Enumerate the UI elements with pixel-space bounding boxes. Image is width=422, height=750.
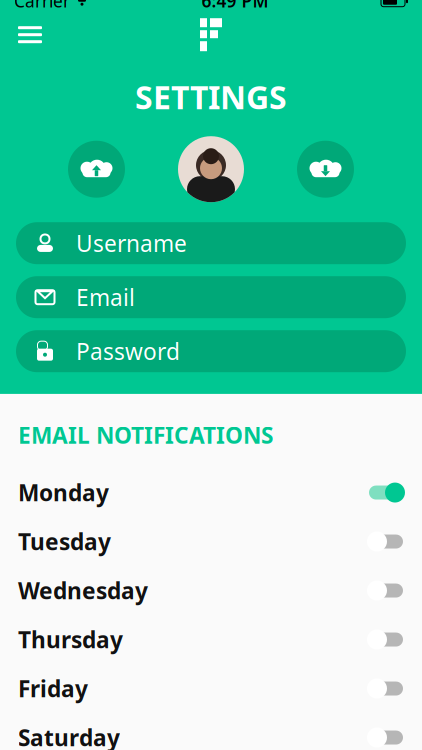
staticText: Monday: [18, 477, 109, 508]
staticText: Wednesday: [18, 575, 148, 606]
button[interactable]: Email: [16, 276, 406, 318]
staticText: EMAIL NOTIFICATIONS: [18, 420, 273, 450]
button[interactable]: Upload: [68, 141, 125, 198]
button[interactable]: Username: [16, 222, 406, 264]
button[interactable]: Friday: [0, 664, 422, 713]
button[interactable]: Thursday: [0, 615, 422, 664]
staticText: Email: [76, 282, 135, 312]
button[interactable]: Monday: [0, 468, 422, 517]
button[interactable]: Saturday: [0, 713, 422, 750]
button[interactable]: Tuesday: [0, 517, 422, 566]
button[interactable]: Wednesday: [0, 566, 422, 615]
staticText: 6:49 PM: [201, 0, 268, 12]
button[interactable]: Download: [297, 141, 354, 198]
button[interactable]: Menu: [8, 13, 52, 57]
staticText: Username: [76, 228, 187, 258]
staticText: Saturday: [18, 722, 120, 750]
staticText: SETTINGS: [135, 76, 287, 118]
button[interactable]: Profile photo: [178, 136, 244, 202]
button[interactable]: Password: [16, 330, 406, 372]
staticText: Password: [76, 336, 180, 366]
staticText: Carrier: [14, 0, 70, 12]
staticText: Friday: [18, 673, 88, 704]
staticText: Thursday: [18, 624, 123, 655]
staticText: Tuesday: [18, 526, 111, 557]
